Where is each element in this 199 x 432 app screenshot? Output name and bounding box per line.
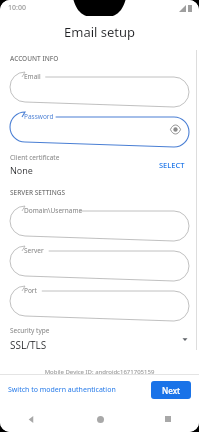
staticText: SERVER SETTINGS — [10, 188, 65, 197]
button[interactable]: Password — [10, 112, 189, 142]
staticText: Security type — [10, 326, 50, 335]
other: Open security type dropdown — [181, 335, 189, 343]
staticText: Port — [24, 286, 37, 295]
staticText: Domain\Username — [24, 206, 83, 215]
staticText: None — [10, 164, 33, 176]
staticText: Client certificate — [10, 153, 60, 162]
staticText: 10:00 — [8, 3, 26, 13]
button[interactable]: Security type — [10, 326, 189, 352]
button[interactable]: Show password — [170, 124, 181, 135]
button[interactable]: SELECT — [155, 157, 189, 173]
staticText: Email — [24, 72, 41, 81]
button[interactable]: Port — [10, 286, 189, 316]
staticText: SELECT — [159, 160, 185, 170]
button[interactable]: Home — [91, 410, 109, 428]
button[interactable]: Email — [10, 72, 189, 102]
staticText: Password — [24, 112, 54, 121]
staticText: Email setup — [64, 23, 136, 41]
button[interactable]: Recent apps — [159, 410, 177, 428]
button[interactable]: Next — [151, 381, 191, 399]
staticText: Next — [162, 385, 181, 396]
staticText: Server — [24, 246, 44, 255]
staticText: SSL/TLS — [10, 338, 47, 352]
button[interactable]: Switch to modern authentication — [8, 381, 151, 399]
button[interactable]: Domain\Username — [10, 206, 189, 236]
button[interactable]: Back — [22, 410, 40, 428]
staticText: Switch to modern authentication — [8, 385, 116, 395]
button[interactable]: Server — [10, 246, 189, 276]
staticText: Mobile Device ID: androidc1671705159 — [10, 368, 189, 374]
staticText: ACCOUNT INFO — [10, 54, 59, 63]
